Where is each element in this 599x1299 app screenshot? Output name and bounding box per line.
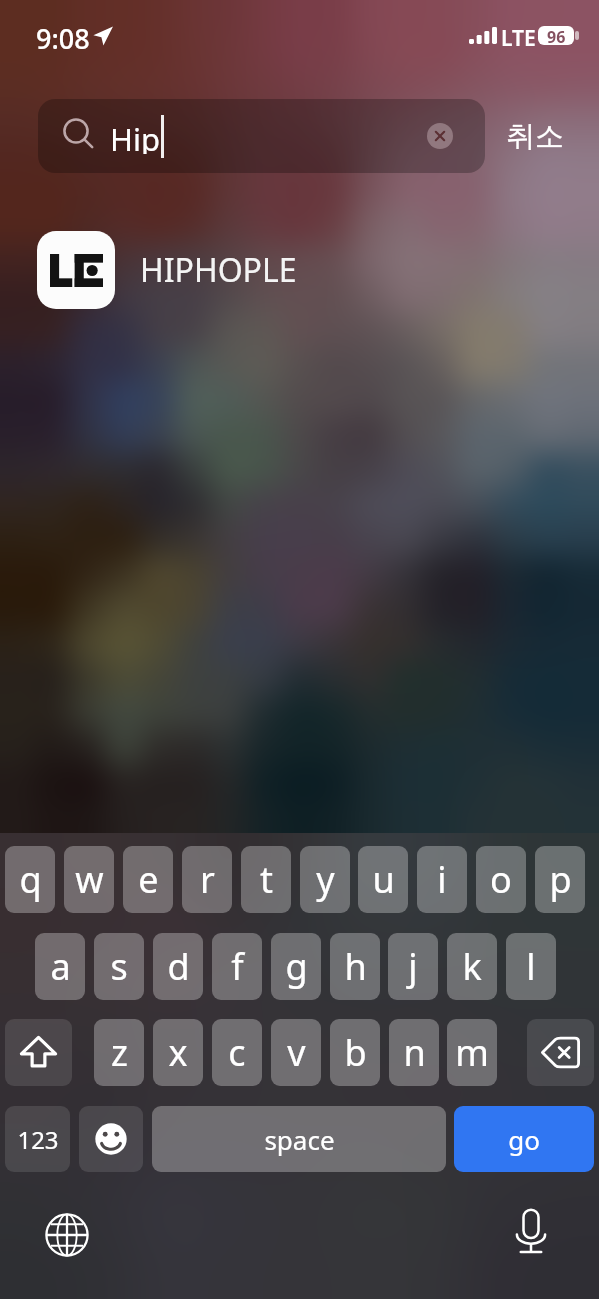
staticText: k (462, 942, 482, 991)
button[interactable]: i (417, 846, 467, 913)
staticText: w (75, 855, 104, 904)
button[interactable]: 123 (5, 1106, 70, 1172)
button[interactable]: w (64, 846, 114, 913)
button[interactable]: 취소 (498, 108, 572, 164)
staticText: 취소 (506, 118, 564, 155)
button[interactable]: c (212, 1019, 262, 1086)
button[interactable]: m (447, 1019, 497, 1086)
button[interactable]: y (300, 846, 350, 913)
button[interactable]: n (389, 1019, 439, 1086)
button[interactable]: Shift (5, 1019, 72, 1086)
button[interactable]: Change keyboard language (44, 1212, 90, 1258)
button[interactable]: HIPHOPLE (0, 225, 599, 315)
button[interactable]: u (358, 846, 408, 913)
button[interactable]: g (271, 933, 321, 1000)
staticText: p (549, 855, 572, 904)
button[interactable]: Emoji (79, 1106, 143, 1172)
button[interactable]: a (35, 933, 85, 1000)
staticText: 9:08 (36, 20, 90, 54)
button[interactable]: r (182, 846, 232, 913)
button[interactable]: l (506, 933, 556, 1000)
staticText: d (167, 942, 190, 991)
staticText: e (138, 855, 159, 904)
button[interactable]: d (153, 933, 203, 1000)
button[interactable]: go (454, 1106, 594, 1172)
staticText: j (408, 942, 418, 991)
button[interactable]: Clear text (427, 123, 453, 149)
staticText: 96 (547, 26, 566, 45)
staticText: space (264, 1122, 335, 1157)
staticText: v (287, 1028, 306, 1077)
button[interactable]: v (271, 1019, 321, 1086)
staticText: c (228, 1028, 246, 1077)
button[interactable]: f (212, 933, 262, 1000)
staticText: r (200, 855, 215, 904)
button[interactable]: t (241, 846, 291, 913)
staticText: m (455, 1028, 489, 1077)
button[interactable]: Dictation (508, 1209, 554, 1255)
staticText: o (490, 855, 512, 904)
staticText: h (344, 942, 367, 991)
staticText: s (110, 942, 128, 991)
staticText: n (403, 1028, 426, 1077)
button[interactable]: e (123, 846, 173, 913)
staticText: g (285, 942, 308, 991)
staticText: f (231, 942, 244, 991)
button[interactable]: b (330, 1019, 380, 1086)
staticText: y (316, 855, 335, 904)
staticText: x (168, 1028, 188, 1077)
staticText: 123 (17, 1123, 59, 1156)
button[interactable]: z (94, 1019, 144, 1086)
button[interactable]: p (535, 846, 585, 913)
button[interactable]: h (330, 933, 380, 1000)
staticText: l (526, 942, 536, 991)
button[interactable]: q (5, 846, 55, 913)
button[interactable]: x (153, 1019, 203, 1086)
staticText: b (344, 1028, 367, 1077)
button[interactable]: Backspace (527, 1019, 594, 1086)
staticText: q (19, 855, 42, 904)
button[interactable]: k (447, 933, 497, 1000)
button[interactable]: j (388, 933, 438, 1000)
staticText: Hip (110, 118, 161, 154)
staticText: LTE (501, 24, 536, 48)
staticText: HIPHOPLE (140, 248, 297, 292)
staticText: go (508, 1122, 540, 1157)
staticText: a (50, 942, 71, 991)
button[interactable]: o (476, 846, 526, 913)
staticText: i (437, 855, 447, 904)
button[interactable]: space (152, 1106, 446, 1172)
staticText: u (372, 855, 395, 904)
staticText: t (260, 855, 273, 904)
button[interactable]: s (94, 933, 144, 1000)
button[interactable]: Hip (38, 99, 485, 173)
staticText: z (111, 1028, 128, 1077)
